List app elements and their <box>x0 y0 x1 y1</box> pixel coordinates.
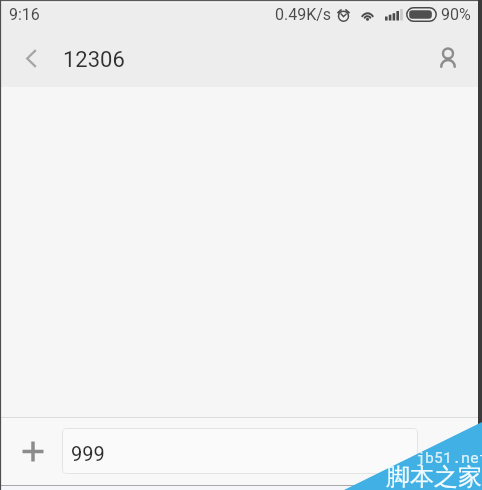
staticText: 999 <box>71 442 105 465</box>
button[interactable]: Add <box>0 418 62 485</box>
button[interactable]: Contact <box>414 28 482 87</box>
button[interactable]: Back <box>0 28 59 87</box>
staticText: 0.49K/s <box>275 5 332 24</box>
button[interactable]: 999 <box>62 428 418 474</box>
staticText: 脚本之家 <box>386 462 482 490</box>
staticText: jb51.net <box>416 447 482 467</box>
staticText: 12306 <box>63 47 125 73</box>
staticText: 90% <box>441 5 471 24</box>
staticText: 9:16 <box>9 5 40 24</box>
